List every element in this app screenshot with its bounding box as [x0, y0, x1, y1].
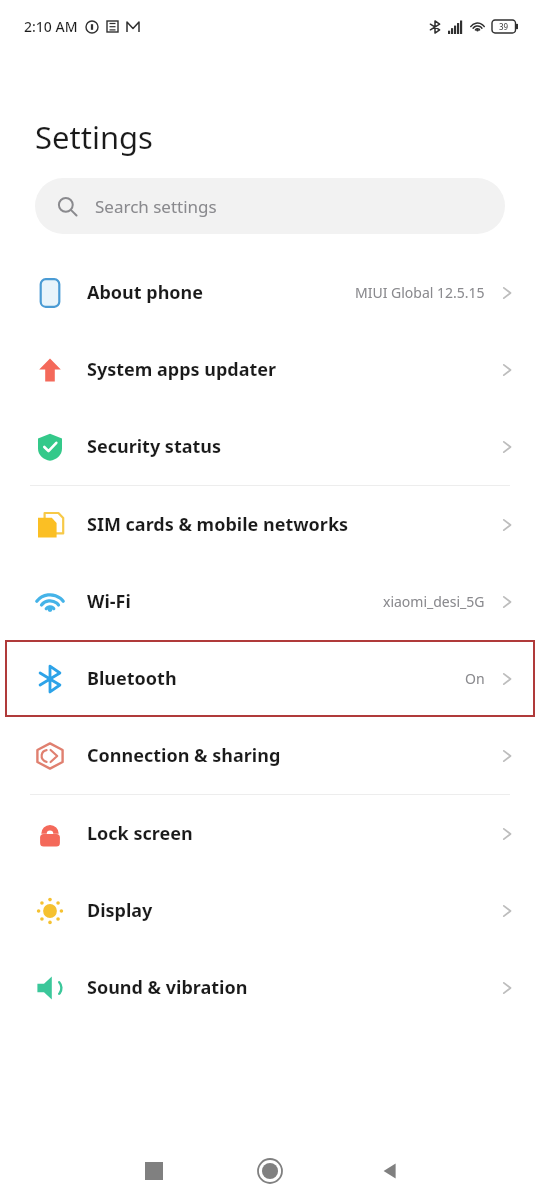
- staticText: Settings: [35, 116, 153, 158]
- button[interactable]: System apps updater: [0, 331, 540, 408]
- staticText: Connection & sharing: [87, 743, 281, 768]
- button[interactable]: Connection & sharing: [0, 717, 540, 794]
- staticText: Bluetooth: [87, 666, 177, 691]
- staticText: Sound & vibration: [87, 975, 248, 1000]
- staticText: Lock screen: [87, 821, 193, 846]
- staticText: 2:10 AM: [24, 17, 78, 36]
- staticText: Wi-Fi: [87, 589, 131, 614]
- staticText: 39: [499, 21, 509, 32]
- staticText: Security status: [87, 434, 222, 459]
- button[interactable]: Display: [0, 872, 540, 949]
- button[interactable]: Lock screen: [0, 795, 540, 872]
- staticText: xiaomi_desi_5G: [383, 592, 485, 611]
- button[interactable]: Recents: [134, 1151, 174, 1191]
- button[interactable]: Sound & vibration: [0, 949, 540, 1026]
- staticText: About phone: [87, 280, 204, 305]
- button[interactable]: Search settings: [35, 178, 505, 234]
- button[interactable]: Bluetooth: [5, 640, 535, 717]
- button[interactable]: SIM cards & mobile networks: [0, 486, 540, 563]
- staticText: MIUI Global 12.5.15: [355, 283, 485, 302]
- button[interactable]: Home: [248, 1149, 292, 1193]
- staticText: System apps updater: [87, 357, 277, 382]
- button[interactable]: Security status: [0, 408, 540, 485]
- staticText: Display: [87, 898, 153, 923]
- staticText: SIM cards & mobile networks: [87, 512, 349, 537]
- staticText: On: [465, 669, 485, 688]
- button[interactable]: Wi-Fi: [0, 563, 540, 640]
- button[interactable]: About phone: [0, 254, 540, 331]
- button[interactable]: Back: [370, 1151, 410, 1191]
- staticText: Search settings: [95, 195, 217, 218]
